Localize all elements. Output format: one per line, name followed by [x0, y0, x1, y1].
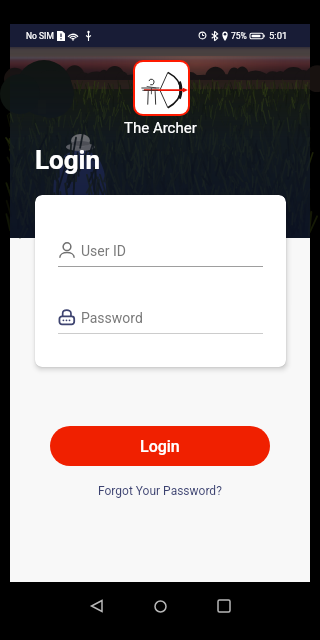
button[interactable]: Login	[50, 426, 270, 466]
staticText: The Archer	[124, 119, 197, 137]
staticText: User ID	[81, 243, 126, 259]
staticText: 5:01	[269, 30, 288, 41]
button[interactable]: Recent apps	[192, 595, 256, 617]
button[interactable]: Forgot Your Password?	[93, 479, 227, 503]
button[interactable]: Back	[64, 595, 128, 617]
button[interactable]: Home	[128, 595, 192, 617]
staticText: No SIM	[26, 31, 54, 41]
staticText: Password	[81, 310, 143, 326]
staticText: Login	[35, 145, 101, 175]
staticText: Login	[140, 437, 180, 456]
staticText: 75%	[231, 31, 247, 41]
